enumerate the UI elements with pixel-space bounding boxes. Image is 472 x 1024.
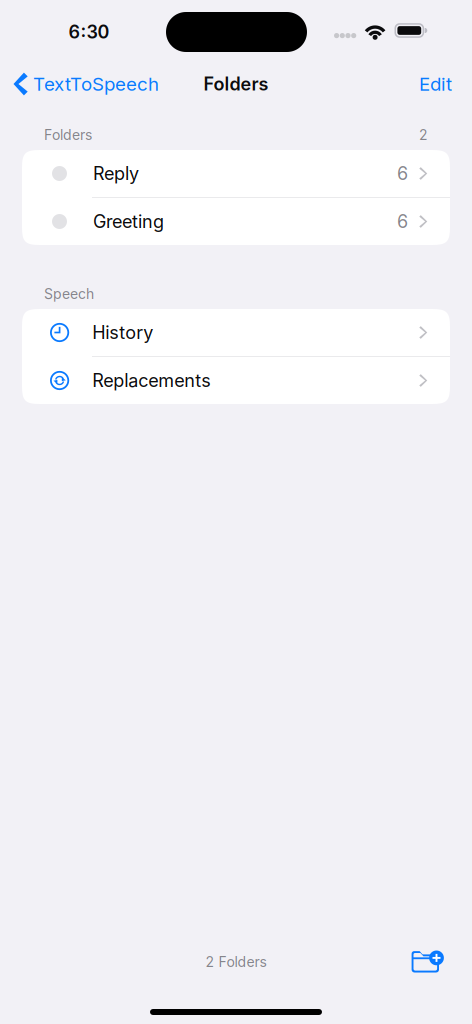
staticText: Speech: [44, 285, 94, 302]
staticText: 2: [419, 126, 428, 143]
staticText: 6: [397, 163, 408, 184]
staticText: Folders: [203, 73, 268, 95]
staticText: TextToSpeech: [33, 73, 159, 95]
staticText: 2 Folders: [205, 953, 266, 970]
staticText: History: [92, 322, 153, 343]
staticText: Reply: [93, 163, 139, 184]
button[interactable]: Greeting: [22, 198, 450, 245]
button[interactable]: New Folder: [399, 943, 472, 980]
staticText: 6: [397, 211, 408, 232]
button[interactable]: TextToSpeech: [0, 66, 159, 102]
staticText: 6:30: [68, 21, 109, 43]
button[interactable]: History: [22, 309, 450, 356]
button[interactable]: Reply: [22, 150, 450, 197]
staticText: Replacements: [92, 370, 211, 391]
staticText: Greeting: [93, 211, 164, 232]
staticText: Edit: [419, 73, 452, 95]
button[interactable]: Replacements: [22, 357, 450, 404]
staticText: Folders: [44, 126, 92, 143]
button[interactable]: Edit: [419, 66, 472, 102]
